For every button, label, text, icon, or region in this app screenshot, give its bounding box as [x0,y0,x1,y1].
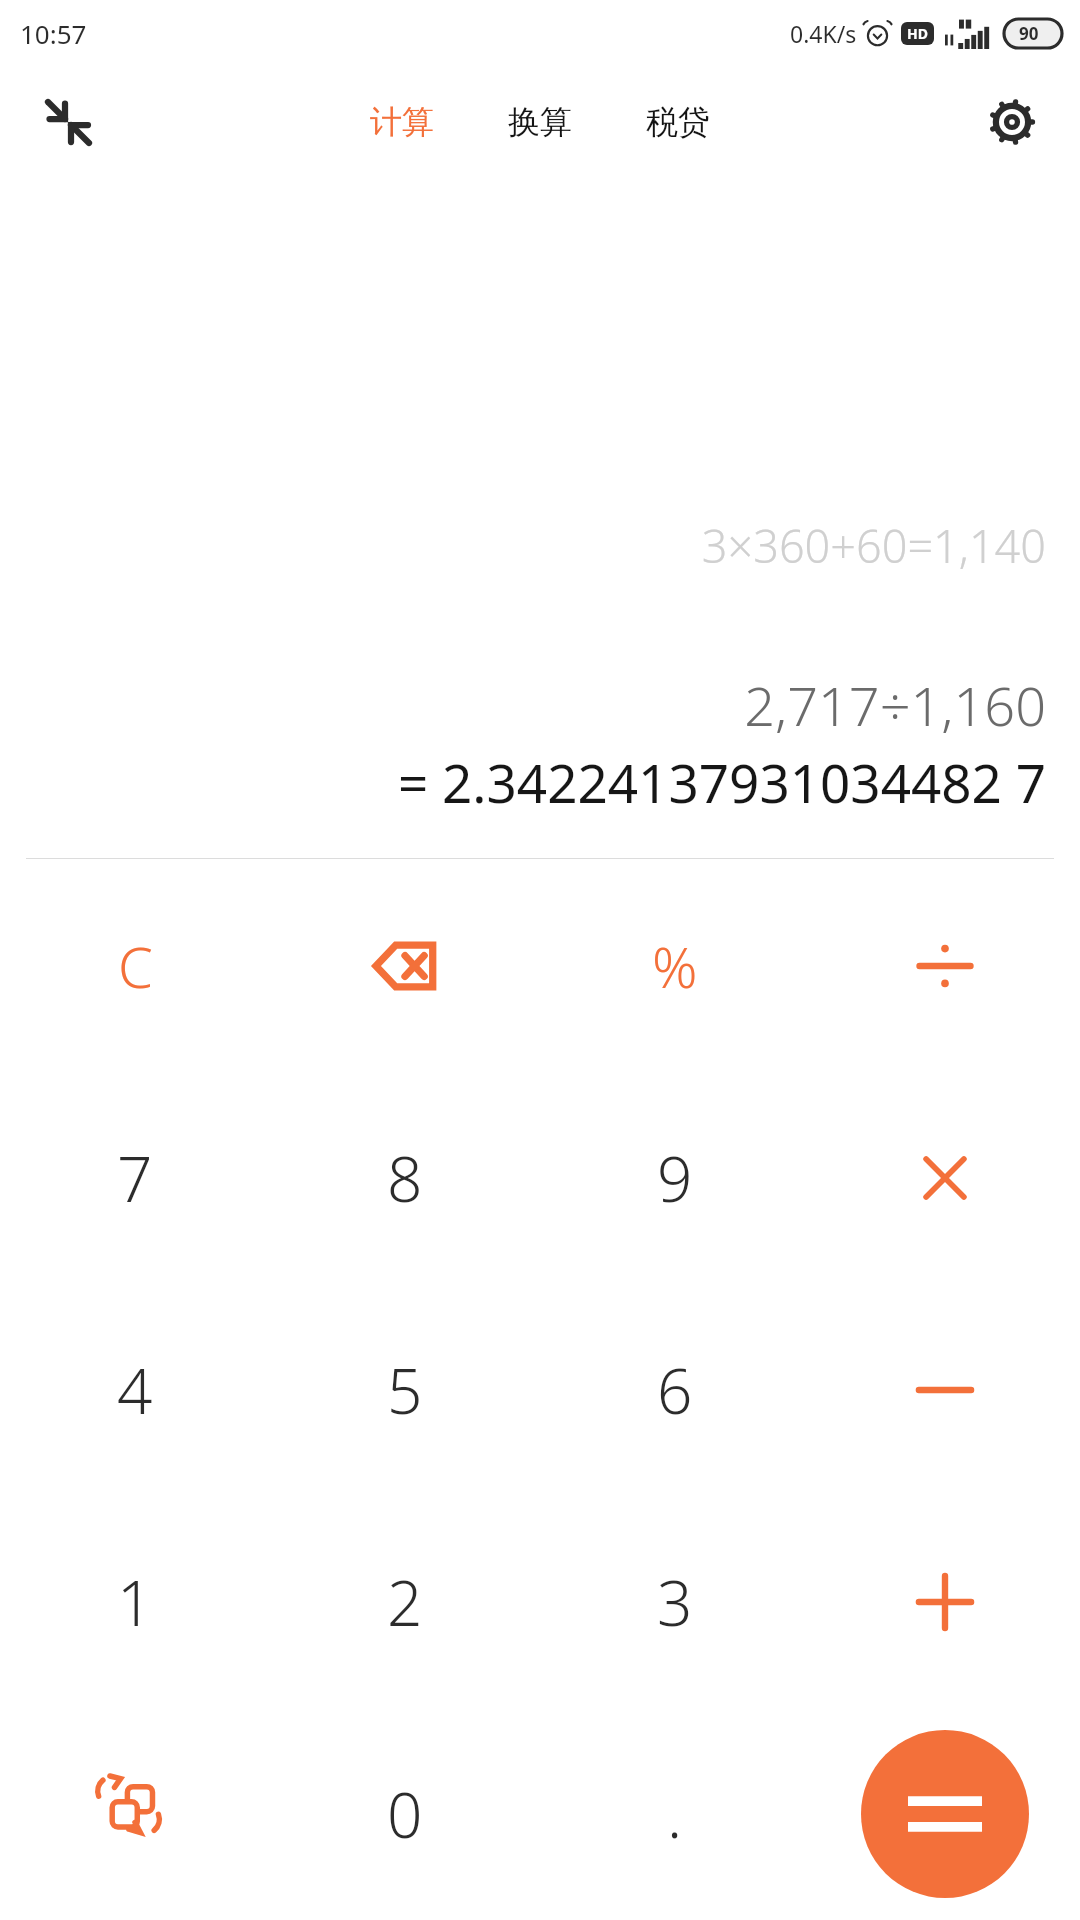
button[interactable]: Multiply [810,1072,1080,1284]
button[interactable]: 4 [0,1284,270,1496]
button[interactable]: Collapse [30,84,106,160]
button[interactable]: Backspace [270,859,540,1072]
button[interactable]: 1 [0,1496,270,1708]
button[interactable]: Unit convert [0,1708,270,1920]
button[interactable]: Divide [810,859,1080,1072]
button[interactable]: Equals [861,1730,1029,1898]
staticText: 8 [387,1136,423,1220]
button[interactable]: Minus [810,1284,1080,1496]
staticText: 5 [387,1348,423,1432]
button[interactable]: Settings [974,84,1050,160]
staticText: % [652,928,698,1004]
button[interactable]: Plus [810,1496,1080,1708]
staticText: HD [907,24,928,43]
button[interactable]: 计算 [362,92,442,152]
button[interactable]: . [540,1708,810,1920]
button[interactable]: 6 [540,1284,810,1496]
staticText: 3×360+60=1,140 [701,515,1046,576]
staticText: 计算 [370,102,434,142]
button[interactable]: 7 [0,1072,270,1284]
staticText: 税贷 [646,102,710,142]
staticText: 6 [657,1348,693,1432]
staticText: 1 [117,1560,153,1644]
button[interactable]: 8 [270,1072,540,1284]
staticText: . [667,1772,683,1856]
staticText: 0.4K/s [790,18,857,49]
button[interactable]: C [0,859,270,1072]
button[interactable]: 0 [270,1708,540,1920]
button[interactable]: 2 [270,1496,540,1708]
staticText: 90 [1019,22,1039,45]
staticText: = 2.34224137931034482 7 [397,746,1046,818]
staticText: 2 [387,1560,423,1644]
staticText: 9 [657,1136,693,1220]
button[interactable]: % [540,859,810,1072]
staticText: 2,717÷1,160 [744,668,1046,742]
staticText: 0 [387,1772,423,1856]
staticText: C [118,928,153,1004]
button[interactable]: 换算 [500,92,580,152]
staticText: 4 [117,1348,153,1432]
staticText: 10:57 [20,16,87,51]
button[interactable]: 9 [540,1072,810,1284]
button[interactable]: 5 [270,1284,540,1496]
staticText: 7 [117,1136,153,1220]
staticText: 换算 [508,102,572,142]
button[interactable]: 税贷 [638,92,718,152]
staticText: 3 [657,1560,693,1644]
button[interactable]: 3 [540,1496,810,1708]
